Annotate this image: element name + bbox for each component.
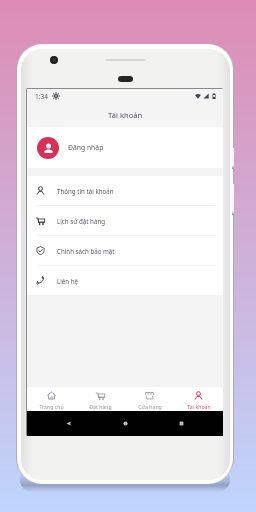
staticText: Trang chủ — [39, 403, 64, 410]
staticText: Thông tin tài khoản — [57, 187, 114, 195]
button[interactable]: Chính sách bảo mật — [27, 236, 223, 265]
button[interactable]: Recent apps — [178, 420, 185, 427]
button[interactable]: Trang chủ — [27, 387, 76, 411]
button[interactable]: Cửa hàng — [125, 387, 174, 411]
button[interactable]: Liên hệ — [27, 266, 223, 295]
button[interactable]: Home — [122, 420, 129, 427]
button[interactable]: Back — [65, 420, 72, 427]
button[interactable]: Tài khoản — [174, 387, 223, 411]
staticText: Chính sách bảo mật — [57, 247, 115, 255]
button[interactable]: Lịch sử đặt hàng — [27, 206, 223, 235]
button[interactable]: Đăng nhập — [27, 127, 223, 168]
button[interactable]: Đặt hàng — [76, 387, 125, 411]
button[interactable]: Thông tin tài khoản — [27, 176, 223, 205]
staticText: Tài khoản — [108, 110, 143, 120]
staticText: Liên hệ — [57, 277, 79, 285]
staticText: Lịch sử đặt hàng — [57, 217, 106, 225]
staticText: Tài khoản — [187, 403, 211, 410]
staticText: Đặt hàng — [89, 403, 112, 410]
staticText: Đăng nhập — [68, 143, 104, 152]
staticText: Cửa hàng — [138, 403, 162, 410]
staticText: 1:34 — [35, 92, 48, 101]
